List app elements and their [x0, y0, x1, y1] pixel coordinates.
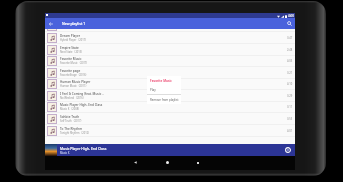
staticText: Favorite Music	[150, 79, 172, 83]
button[interactable]: Search	[284, 18, 295, 29]
staticText: Favorite Music (2017)	[60, 61, 88, 65]
staticText: 3:11	[287, 105, 293, 109]
button[interactable]: Music Player High- End Class	[45, 144, 295, 156]
button[interactable]: Empire State	[45, 44, 295, 56]
button[interactable]: Music	[45, 29, 295, 32]
staticText: 4:01	[287, 129, 293, 133]
button[interactable]: I Feel It Coming (feat. Music ..	[45, 90, 295, 102]
button[interactable]: Play	[147, 86, 181, 94]
button[interactable]: Remove from playlist	[147, 95, 181, 104]
staticText: 3:55	[287, 117, 293, 121]
staticText: 3:47	[287, 36, 293, 40]
staticText: Sohbte Truth	[60, 115, 80, 119]
staticText: 4:05	[287, 59, 293, 63]
staticText: Hybrid Player (2017)	[60, 38, 86, 42]
staticText: New playlist 1	[62, 21, 86, 26]
button[interactable]: Recents	[192, 157, 203, 168]
button[interactable]: Human Music Player	[45, 78, 295, 90]
staticText: Tonight Rhythm (2012)	[60, 131, 89, 135]
staticText: Remove from playlist	[150, 98, 179, 102]
staticText: Next State (2015)	[60, 50, 83, 54]
staticText: Human Music (2011)	[60, 84, 87, 88]
staticText: 2:48	[287, 48, 293, 52]
button[interactable]: Home	[162, 157, 173, 168]
staticText: Music Player High- End Class	[60, 146, 107, 151]
button[interactable]: Back	[45, 18, 56, 29]
staticText: Self Truth (2017)	[60, 119, 82, 123]
button[interactable]: Dream Player	[45, 32, 295, 44]
staticText: No Weeknd (2016)	[60, 96, 84, 100]
button[interactable]: Music Player High- End Class	[45, 101, 295, 113]
button[interactable]: Favorite page	[45, 67, 295, 79]
button[interactable]: Sohbte Truth	[45, 113, 295, 125]
staticText: Music K	[60, 151, 70, 155]
staticText: Music Player High- End Class	[60, 103, 103, 107]
staticText: 4:10	[287, 82, 293, 86]
staticText: 3:29	[287, 94, 293, 98]
staticText: Play	[150, 88, 156, 92]
button[interactable]: Favorite Music	[45, 55, 295, 67]
button[interactable]: Back	[130, 157, 141, 168]
button[interactable]: To The Rhythm	[45, 125, 295, 137]
staticText: To The Rhythm	[60, 127, 83, 131]
staticText: Music K (2008)	[60, 107, 79, 111]
staticText: Favorite page	[60, 69, 81, 73]
staticText: 4:00	[288, 14, 294, 18]
staticText: Dream Player	[60, 34, 80, 38]
staticText: Favorite Music	[60, 57, 82, 61]
staticText: FavoriteStage (2016)	[60, 73, 87, 77]
staticText: I Feel It Coming (feat. Music ..	[60, 92, 104, 96]
button[interactable]: Play	[282, 144, 294, 156]
staticText: Empire State	[60, 46, 79, 50]
staticText: 3:21	[287, 71, 293, 75]
staticText: Human Music Player	[60, 80, 91, 84]
